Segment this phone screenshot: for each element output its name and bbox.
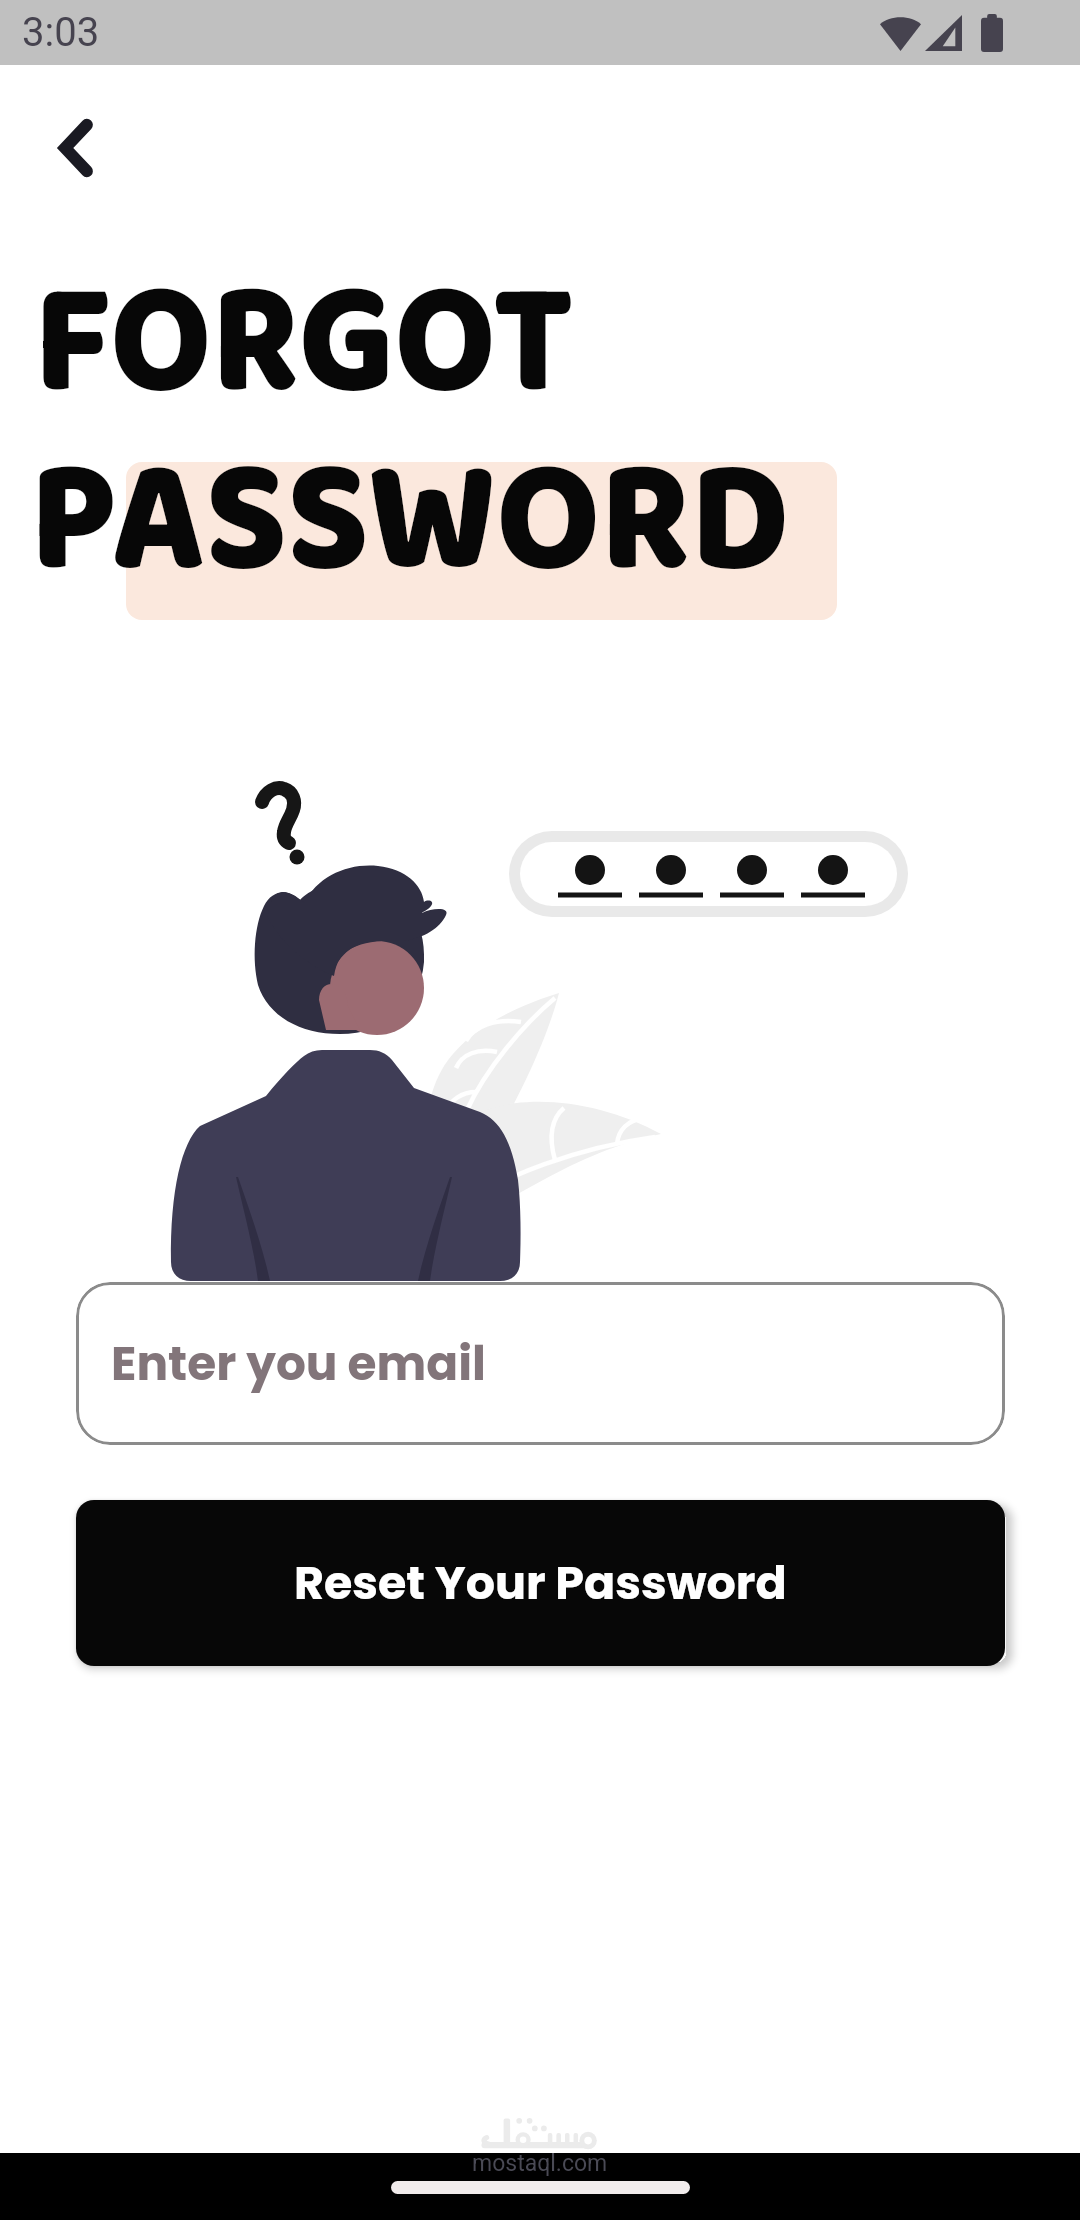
button[interactable]: Back: [22, 94, 130, 202]
button[interactable]: Reset Your Password: [76, 1500, 1005, 1666]
staticText: PASSWORD: [30, 394, 790, 650]
staticText: mostaql.com: [472, 2150, 608, 2177]
staticText: FORGOT: [34, 216, 574, 472]
button[interactable]: Enter you email: [76, 1282, 1005, 1445]
staticText: Enter you email: [111, 1331, 486, 1397]
staticText: Reset Your Password: [294, 1551, 787, 1615]
staticText: 3:03: [22, 9, 100, 56]
